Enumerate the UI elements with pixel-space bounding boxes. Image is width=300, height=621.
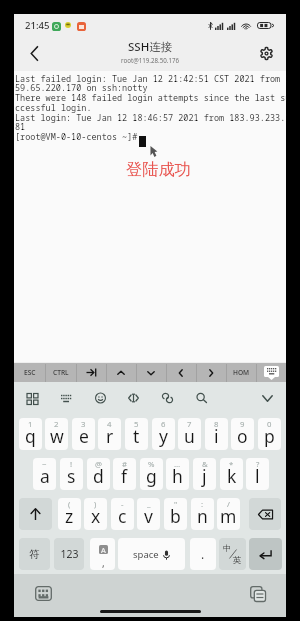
button[interactable]: Shift (19, 498, 52, 530)
staticText: g (146, 464, 157, 488)
staticText: 0 (267, 419, 272, 430)
staticText: SSH连接 (128, 39, 173, 55)
staticText: A (101, 545, 106, 554)
staticText: n (197, 504, 208, 528)
button[interactable]: left (166, 363, 196, 382)
button[interactable]: ? (246, 458, 269, 490)
button[interactable]: & (193, 458, 216, 490)
staticText: space (133, 548, 159, 561)
button[interactable]: up (106, 363, 136, 382)
staticText: ~ (42, 459, 47, 470)
button[interactable]: ) (84, 498, 107, 530)
button[interactable]: smiley (88, 386, 112, 410)
staticText: 6 (161, 419, 166, 430)
staticText: 1 (28, 419, 33, 430)
button[interactable]: tab (76, 363, 106, 382)
button[interactable]: … (166, 458, 189, 490)
staticText: 登陆成功 (126, 159, 191, 179)
button[interactable]: A (90, 538, 115, 570)
button[interactable]: # (113, 458, 136, 490)
staticText: 4 (107, 419, 112, 430)
staticText: : (201, 499, 204, 510)
button[interactable]: 符 (19, 538, 50, 570)
button[interactable]: space (118, 538, 185, 570)
button[interactable]: / (217, 498, 240, 530)
button[interactable]: ( (58, 498, 81, 530)
staticText: & (202, 459, 208, 470)
staticText: h (172, 464, 183, 488)
button[interactable]: 6 (152, 418, 175, 450)
staticText: ESC (24, 368, 36, 377)
button[interactable]: _ (137, 498, 160, 530)
button[interactable]: 9 (231, 418, 254, 450)
staticText: . (201, 546, 205, 562)
staticText: q (25, 424, 36, 448)
staticText: CTRL (53, 368, 69, 377)
button[interactable]: 5 (125, 418, 148, 450)
button[interactable]: 0 (258, 418, 281, 450)
button[interactable]: right (196, 363, 226, 382)
staticText: m (220, 504, 237, 528)
button[interactable]: Back (20, 39, 48, 67)
staticText: i (214, 424, 219, 448)
button[interactable]: Collapse keyboard (255, 386, 279, 410)
staticText: 59.65.220.170 on ssh:notty (15, 82, 148, 94)
button[interactable]: " (164, 498, 187, 530)
staticText: ! (70, 459, 73, 470)
button[interactable]: 4 (98, 418, 121, 450)
staticText: x (91, 504, 101, 528)
button[interactable]: . (190, 538, 216, 570)
button[interactable]: ! (60, 458, 83, 490)
button[interactable]: kb (54, 386, 78, 410)
staticText: * (229, 459, 234, 470)
button[interactable]: Settings (252, 39, 280, 67)
staticText: root@119.28.50.176 (121, 56, 180, 64)
staticText: 9 (240, 419, 245, 430)
button[interactable]: 2 (45, 418, 68, 450)
button[interactable]: : (191, 498, 214, 530)
button[interactable]: clip (155, 386, 179, 410)
button[interactable]: * (220, 458, 243, 490)
staticText: 123 (60, 547, 79, 561)
button[interactable]: 8 (205, 418, 228, 450)
staticText: 8 (214, 419, 219, 430)
button[interactable]: kbd (256, 363, 286, 382)
button[interactable]: 中 (219, 538, 246, 570)
staticText: a (40, 464, 50, 488)
staticText: ) (94, 499, 97, 510)
staticText: 3 (81, 419, 86, 430)
staticText: / (227, 499, 230, 510)
button[interactable]: @ (87, 458, 110, 490)
button[interactable]: search (189, 386, 213, 410)
staticText: j (202, 464, 207, 488)
button[interactable]: - (111, 498, 134, 530)
button[interactable]: % (140, 458, 163, 490)
button[interactable]: ESC (14, 363, 45, 382)
button[interactable]: grid (20, 386, 44, 410)
staticText: ccessful login. (15, 102, 92, 114)
button[interactable]: CTRL (45, 363, 76, 382)
button[interactable]: cursor (121, 386, 145, 410)
button[interactable]: 3 (72, 418, 95, 450)
button[interactable]: 7 (178, 418, 201, 450)
staticText: w (50, 424, 64, 448)
button[interactable]: 123 (54, 538, 84, 570)
button[interactable]: 1 (19, 418, 42, 450)
button[interactable]: down (136, 363, 166, 382)
staticText: l (255, 464, 260, 488)
button[interactable]: Enter (249, 538, 282, 570)
button[interactable]: HOM (226, 363, 256, 382)
button[interactable]: ~ (33, 458, 56, 490)
staticText: Last failed login: Tue Jan 12 21:42:51 C… (15, 73, 287, 85)
button[interactable]: Recent apps (250, 586, 266, 602)
staticText: , (102, 556, 105, 570)
button[interactable]: Hide keyboard (35, 586, 52, 601)
staticText: 英 (233, 555, 242, 566)
staticText: y (159, 424, 168, 448)
staticText: f (121, 464, 128, 488)
staticText: @ (95, 459, 103, 470)
staticText: [root@VM-0-10-centos ~]# (15, 131, 143, 143)
button[interactable]: Backspace (249, 498, 281, 530)
staticText: e (79, 424, 89, 448)
staticText: c (118, 504, 127, 528)
